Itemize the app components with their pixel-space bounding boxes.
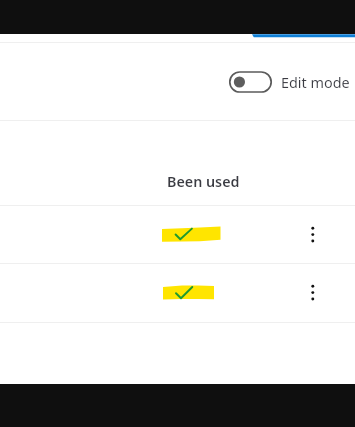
staticText: Edit mode: [281, 73, 350, 93]
button[interactable]: More options: [302, 226, 323, 248]
button[interactable]: Been used item 1: [0, 206, 355, 263]
button[interactable]: Toggle edit mode: [229, 71, 350, 93]
staticText: Been used: [167, 172, 240, 191]
button[interactable]: More options: [302, 284, 323, 306]
button[interactable]: Toggle edit mode: [229, 71, 272, 93]
button[interactable]: Been used item 2: [0, 264, 355, 322]
